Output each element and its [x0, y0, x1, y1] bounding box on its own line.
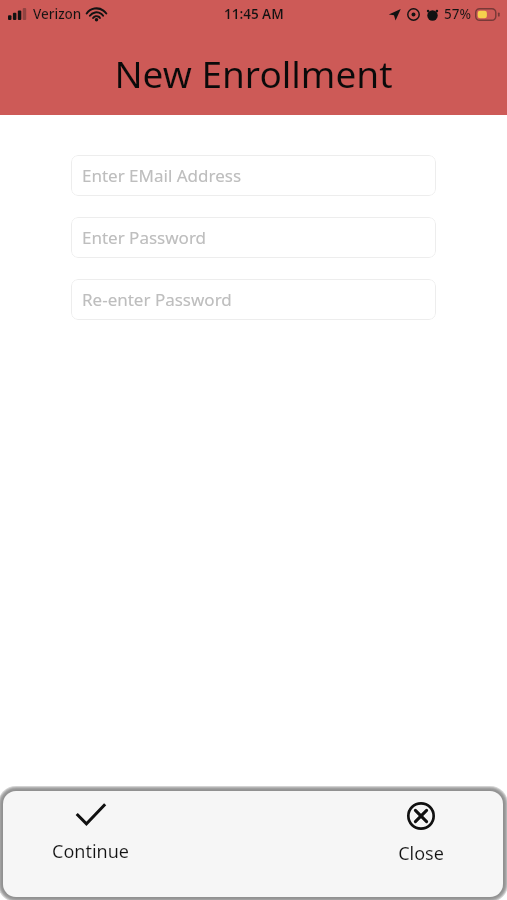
staticText: Verizon	[33, 5, 82, 23]
staticText: Continue	[52, 839, 129, 864]
other: Close	[407, 802, 435, 830]
button[interactable]: Re-enter Password	[71, 279, 436, 320]
staticText: Close	[398, 841, 444, 866]
button[interactable]: Close	[361, 791, 481, 877]
button[interactable]: Enter Password	[71, 217, 436, 258]
staticText: 11:45 AM	[224, 5, 284, 23]
staticText: Enter EMail Address	[82, 164, 242, 187]
staticText: 57%	[444, 5, 471, 23]
button[interactable]: Continue	[25, 791, 155, 877]
button[interactable]: Enter EMail Address	[71, 155, 436, 196]
staticText: Re-enter Password	[82, 288, 232, 311]
staticText: New Enrollment	[0, 48, 507, 98]
other: Continue	[76, 804, 105, 826]
staticText: Enter Password	[82, 226, 207, 249]
